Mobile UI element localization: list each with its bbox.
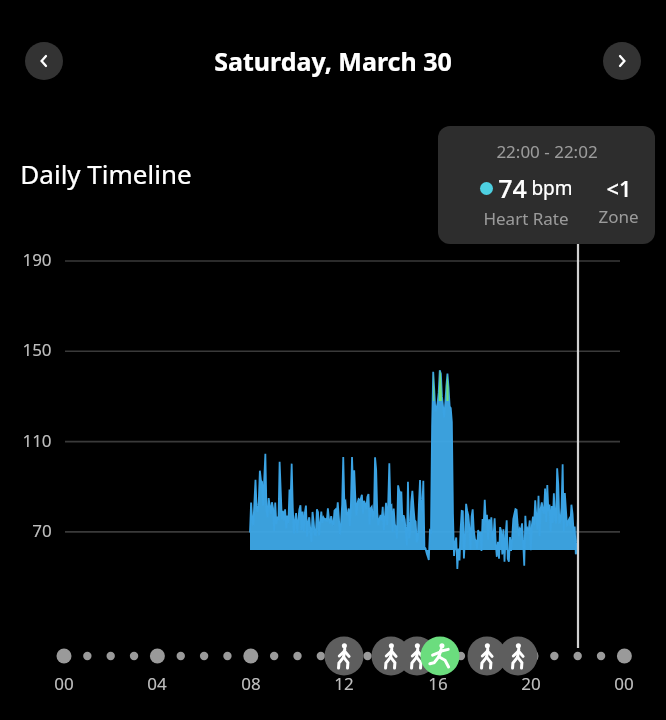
button[interactable]: 04 [132, 672, 182, 695]
staticText: 150 [22, 338, 52, 361]
button[interactable]: 20 [506, 672, 556, 695]
staticText: Daily Timeline [20, 156, 192, 191]
button[interactable]: Previous day [25, 42, 63, 80]
button[interactable]: 00 [599, 672, 649, 695]
staticText: 00 [54, 672, 74, 695]
staticText: 12 [334, 672, 354, 695]
staticText: bpm [531, 175, 573, 201]
staticText: 190 [22, 248, 52, 271]
button[interactable]: 00 [39, 672, 89, 695]
staticText: 00 [614, 672, 634, 695]
button[interactable]: 16 [413, 672, 463, 695]
staticText: 08 [241, 672, 261, 695]
button[interactable]: Next day [603, 42, 641, 80]
staticText: 16 [428, 672, 448, 695]
button[interactable]: 22:00 - 22:02 [438, 126, 655, 244]
staticText: 110 [22, 429, 52, 452]
staticText: 70 [32, 519, 52, 542]
staticText: Heart Rate [483, 207, 569, 230]
staticText: <1 [606, 173, 632, 203]
staticText: 74 [498, 171, 527, 205]
staticText: 04 [147, 672, 167, 695]
staticText: 22:00 - 22:02 [496, 140, 598, 163]
staticText: Zone [598, 205, 639, 228]
staticText: 20 [521, 672, 541, 695]
button[interactable]: 12 [319, 672, 369, 695]
button[interactable]: 08 [226, 672, 276, 695]
staticText: Saturday, March 30 [214, 44, 452, 78]
